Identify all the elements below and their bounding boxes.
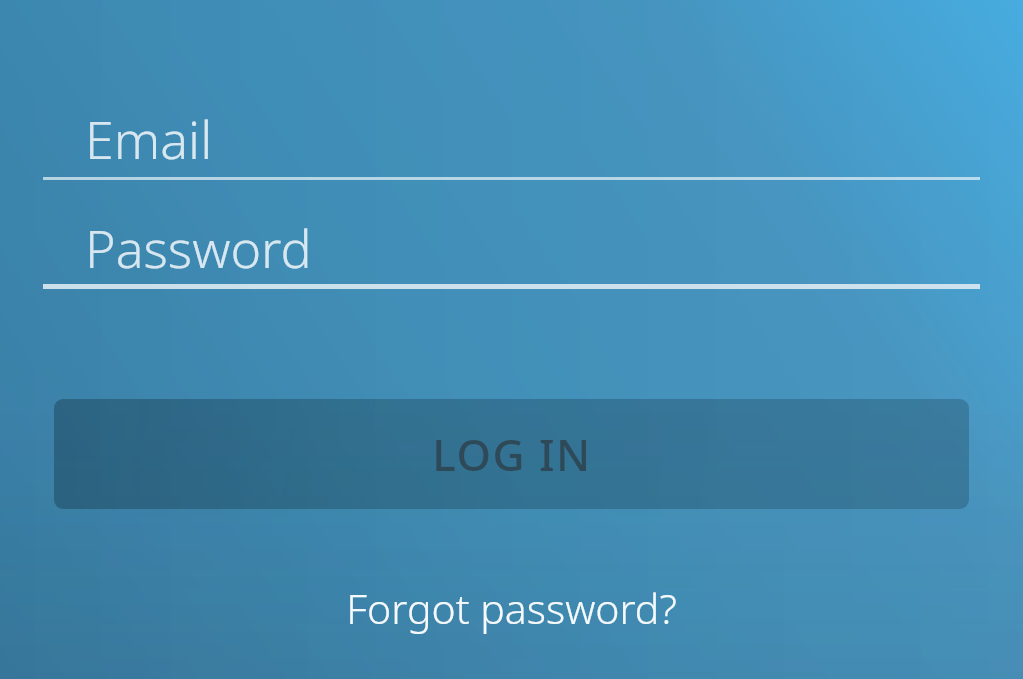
staticText: Password (85, 212, 312, 283)
staticText: LOG IN (432, 424, 592, 484)
staticText: Forgot password? (346, 580, 677, 636)
button[interactable]: Password (43, 205, 980, 289)
button[interactable]: LOG IN (54, 399, 969, 509)
staticText: Email (85, 103, 213, 174)
button[interactable]: Forgot password? (0, 572, 1023, 644)
button[interactable]: Email (43, 96, 980, 180)
